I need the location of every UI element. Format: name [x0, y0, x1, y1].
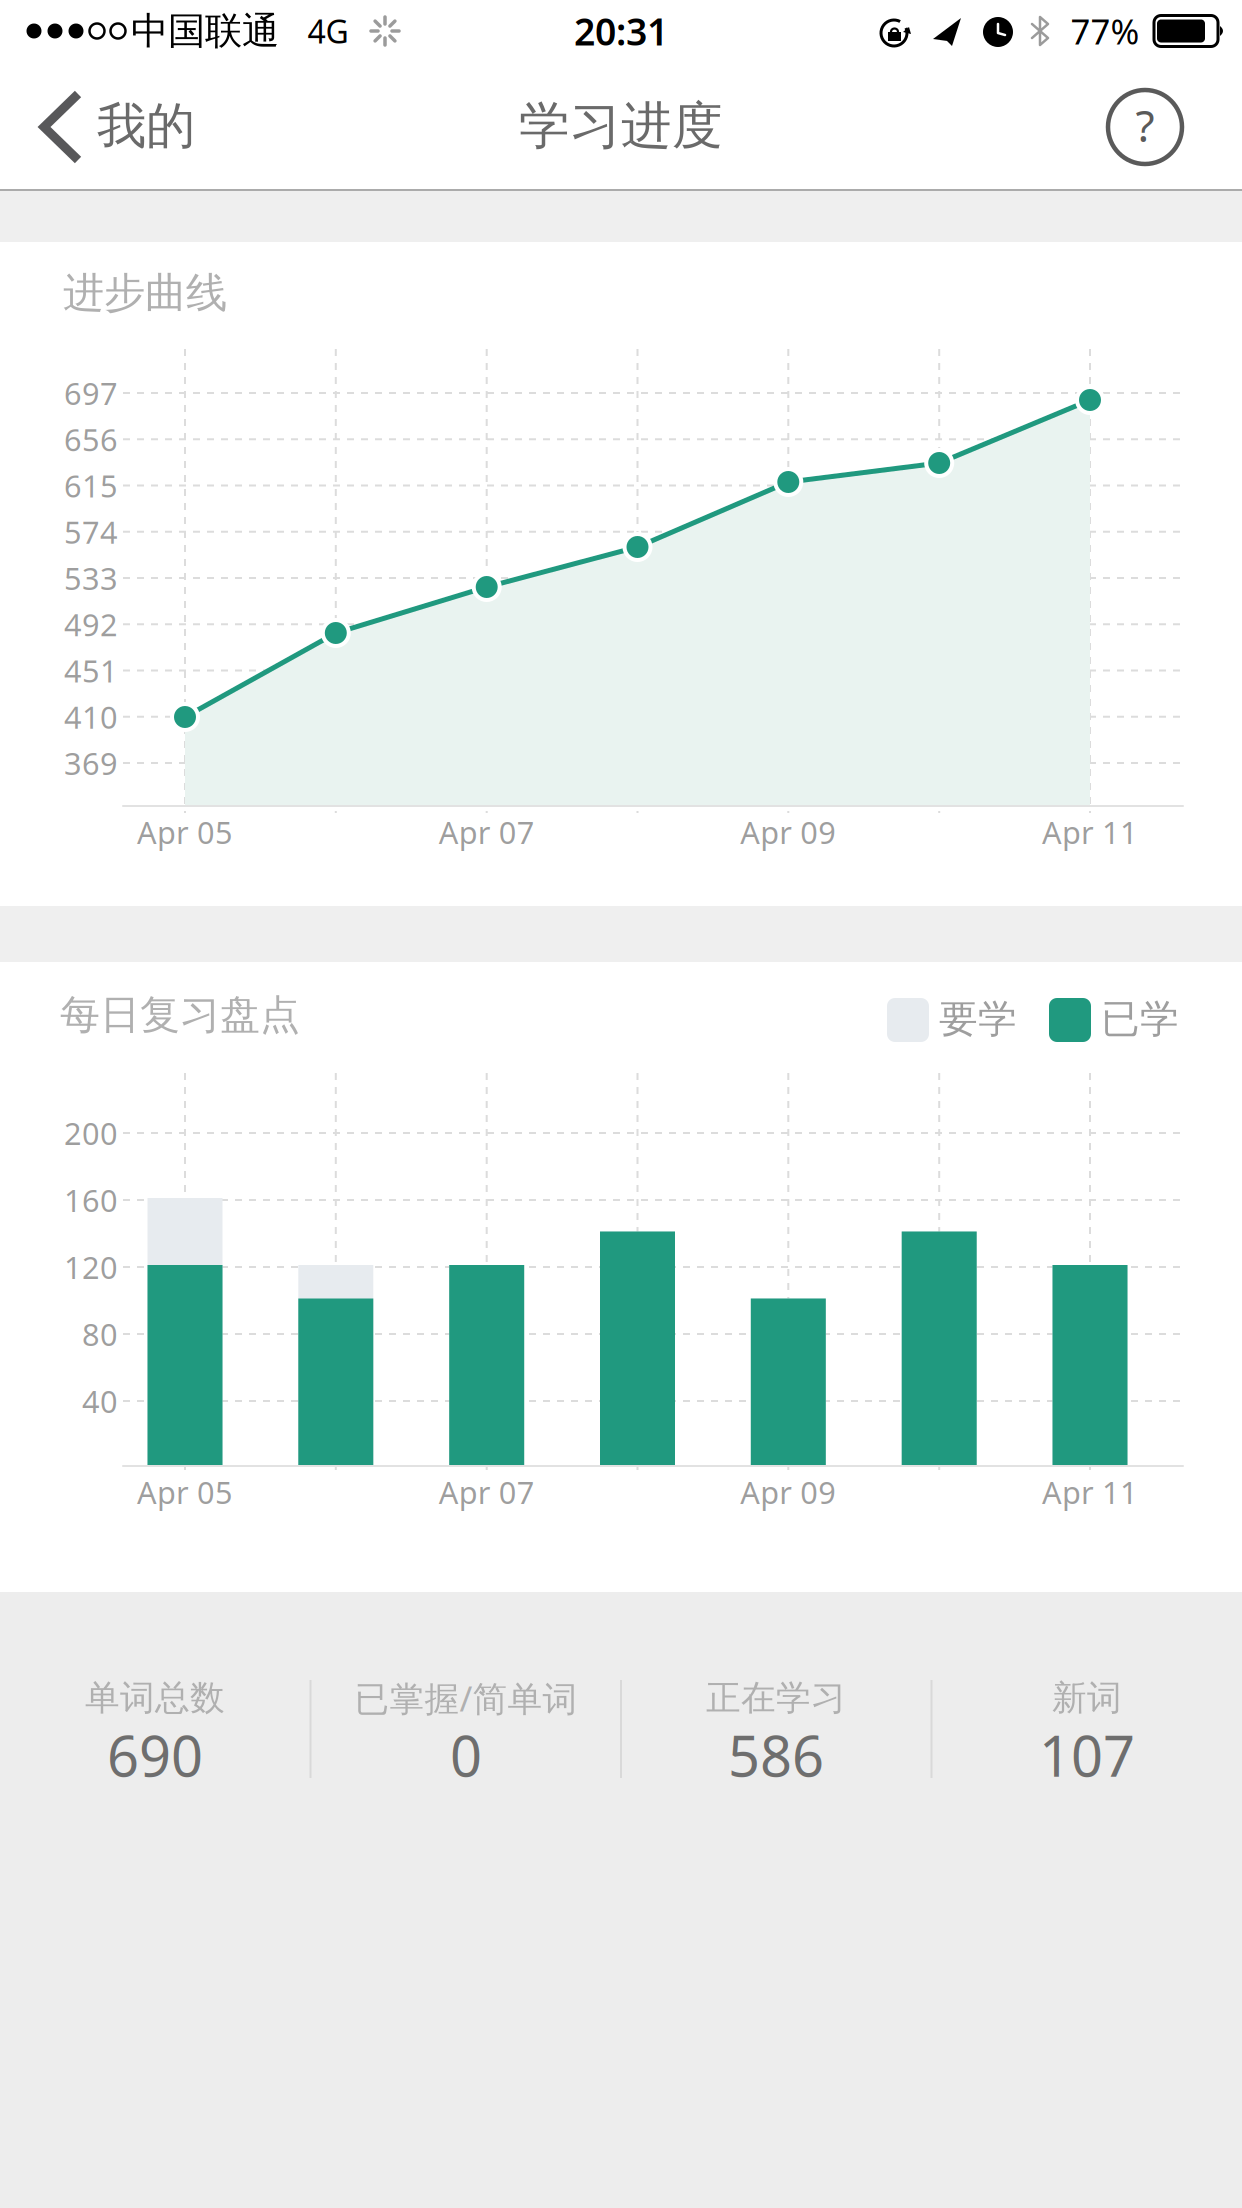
staticText: 77%: [1070, 8, 1139, 54]
staticText: 492: [64, 604, 118, 645]
staticText: 进步曲线: [63, 268, 227, 318]
staticText: 已掌握/简单词: [354, 1675, 577, 1721]
staticText: 新词: [1052, 1677, 1122, 1719]
staticText: 656: [64, 419, 118, 460]
staticText: Apr 09: [740, 1472, 836, 1512]
staticText: Apr 11: [1042, 812, 1138, 852]
staticText: 200: [64, 1113, 118, 1153]
staticText: Apr 07: [439, 1472, 535, 1512]
staticText: Apr 05: [137, 812, 233, 852]
staticText: 533: [64, 558, 118, 598]
staticText: 学习进度: [519, 95, 723, 157]
staticText: 我的: [97, 96, 195, 156]
staticText: Apr 11: [1042, 1472, 1138, 1512]
staticText: 单词总数: [85, 1677, 225, 1719]
staticText: 615: [64, 465, 118, 506]
button[interactable]: 我的: [0, 0, 1242, 2208]
staticText: 4G: [307, 10, 348, 52]
staticText: 80: [82, 1314, 118, 1354]
staticText: 40: [82, 1381, 118, 1421]
staticText: 410: [64, 696, 118, 737]
staticText: 697: [64, 373, 118, 413]
staticText: Apr 09: [740, 812, 836, 852]
staticText: 20:31: [574, 6, 668, 56]
staticText: 574: [64, 511, 118, 552]
staticText: 0: [450, 1718, 482, 1792]
staticText: 每日复习盘点: [60, 990, 300, 1039]
staticText: 120: [64, 1247, 118, 1287]
staticText: 690: [107, 1718, 203, 1792]
staticText: 451: [64, 650, 118, 691]
staticText: 已学: [1101, 995, 1179, 1043]
staticText: 107: [1039, 1718, 1135, 1792]
staticText: 要学: [939, 995, 1017, 1043]
staticText: 正在学习: [706, 1677, 846, 1719]
staticText: 369: [64, 743, 118, 783]
button[interactable]: ?: [1108, 90, 1182, 164]
staticText: 中国联通: [131, 8, 279, 54]
staticText: Apr 05: [137, 1472, 233, 1512]
staticText: 586: [728, 1718, 824, 1792]
staticText: Apr 07: [439, 812, 535, 852]
staticText: 160: [64, 1180, 118, 1220]
staticText: ?: [1135, 96, 1154, 154]
